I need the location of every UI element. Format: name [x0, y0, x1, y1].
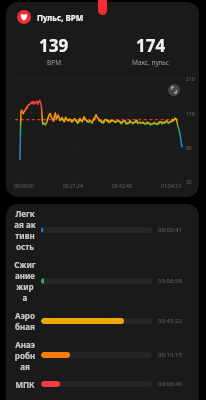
staticText: Аэробная: [14, 310, 36, 332]
staticText: 00:00:00: [14, 183, 34, 190]
staticText: Макс. пульс: [132, 58, 169, 67]
staticText: Легкая активность: [14, 208, 36, 252]
staticText: Сжигание жира: [14, 259, 36, 303]
staticText: 00:42:48: [112, 183, 132, 190]
staticText: 00:21:24: [63, 183, 83, 190]
staticText: 01:04:13: [161, 183, 181, 190]
staticText: BPM: [47, 58, 62, 67]
staticText: 139: [39, 34, 69, 57]
staticText: 00:10:15: [158, 351, 182, 359]
staticText: 174: [136, 34, 166, 57]
staticText: МПК: [14, 379, 36, 390]
staticText: Пульс, BPM: [37, 12, 84, 23]
staticText: 30: [186, 179, 192, 186]
staticText: Анаэробная: [14, 339, 36, 372]
staticText: 00:45:22: [158, 317, 182, 325]
staticText: 00:06:46: [158, 380, 182, 388]
button[interactable]: МПК: [6, 375, 199, 393]
staticText: 150: [186, 111, 195, 118]
staticText: 90: [186, 145, 192, 152]
staticText: 00:00:58: [158, 277, 182, 285]
button[interactable]: Expand chart: [168, 84, 180, 96]
staticText: 00:00:41: [158, 226, 182, 234]
button[interactable]: Аэробная: [6, 306, 199, 335]
button[interactable]: Легкая активность: [6, 204, 199, 255]
button[interactable]: Сжигание жира: [6, 255, 199, 306]
staticText: 210: [186, 76, 195, 83]
button[interactable]: Анаэробная: [6, 335, 199, 375]
